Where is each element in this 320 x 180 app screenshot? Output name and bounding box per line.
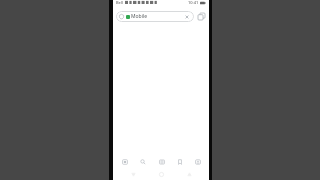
button[interactable]: Home: [116, 155, 133, 168]
button[interactable]: Clear: [183, 13, 191, 21]
button[interactable]: Mobile: [116, 11, 194, 22]
button[interactable]: Bookmarks: [171, 155, 188, 168]
button[interactable]: Search: [134, 155, 151, 168]
button[interactable]: Recents: [181, 170, 197, 179]
button[interactable]: Menu: [153, 155, 170, 168]
button[interactable]: Back: [125, 170, 141, 179]
button[interactable]: Tabs: [196, 11, 207, 22]
button[interactable]: Profile: [189, 155, 206, 168]
staticText: Bell: [116, 0, 124, 5]
button[interactable]: Home: [153, 170, 169, 179]
staticText: Mobile: [131, 13, 148, 20]
staticText: 10:41: [188, 0, 199, 5]
